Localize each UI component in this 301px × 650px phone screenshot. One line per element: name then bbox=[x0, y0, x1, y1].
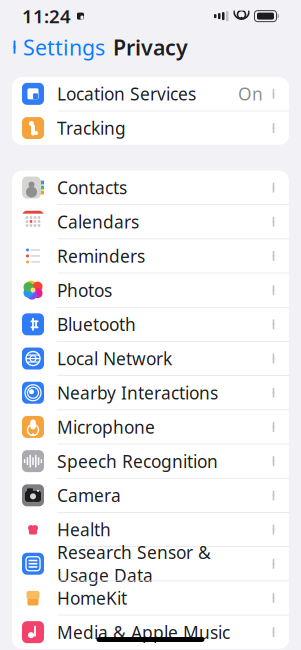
staticText: Settings bbox=[23, 33, 105, 61]
staticText: Reminders bbox=[57, 244, 145, 267]
staticText: Bluetooth bbox=[57, 313, 136, 336]
button[interactable]: Microphone bbox=[12, 410, 289, 444]
staticText: Speech Recognition bbox=[57, 450, 218, 473]
button[interactable]: Contacts bbox=[12, 171, 289, 205]
staticText: Health bbox=[57, 518, 111, 541]
staticText: On bbox=[238, 82, 263, 105]
button[interactable]: Health bbox=[12, 513, 289, 547]
button[interactable]: Photos bbox=[12, 273, 289, 308]
button[interactable]: Settings bbox=[0, 27, 105, 67]
button[interactable]: Reminders bbox=[12, 239, 289, 273]
staticText: Research Sensor & Usage Data bbox=[57, 541, 211, 587]
staticText: Location Services bbox=[57, 82, 196, 105]
staticText: Local Network bbox=[57, 347, 172, 370]
button[interactable]: Camera bbox=[12, 479, 289, 513]
staticText: Microphone bbox=[57, 415, 155, 438]
staticText: Contacts bbox=[57, 176, 127, 199]
button[interactable]: HomeKit bbox=[12, 581, 289, 615]
button[interactable]: Calendars bbox=[12, 205, 289, 239]
staticText: 11:24 bbox=[22, 4, 71, 28]
button[interactable]: Location Services bbox=[12, 77, 289, 111]
button[interactable]: Tracking bbox=[12, 111, 289, 145]
staticText: HomeKit bbox=[57, 586, 127, 609]
staticText: Calendars bbox=[57, 210, 139, 233]
button[interactable]: Local Network bbox=[12, 342, 289, 376]
staticText: Privacy bbox=[113, 33, 188, 61]
staticText: Camera bbox=[57, 484, 121, 507]
button[interactable]: Speech Recognition bbox=[12, 444, 289, 479]
button[interactable]: Nearby Interactions bbox=[12, 376, 289, 410]
button[interactable]: Bluetooth bbox=[12, 308, 289, 342]
staticText: Media & Apple Music bbox=[57, 621, 230, 644]
staticText: Tracking bbox=[57, 116, 126, 139]
button[interactable]: Media & Apple Music bbox=[12, 615, 289, 649]
staticText: Photos bbox=[57, 279, 112, 302]
staticText: Nearby Interactions bbox=[57, 381, 218, 404]
button[interactable]: Research Sensor & Usage Data bbox=[12, 547, 289, 581]
